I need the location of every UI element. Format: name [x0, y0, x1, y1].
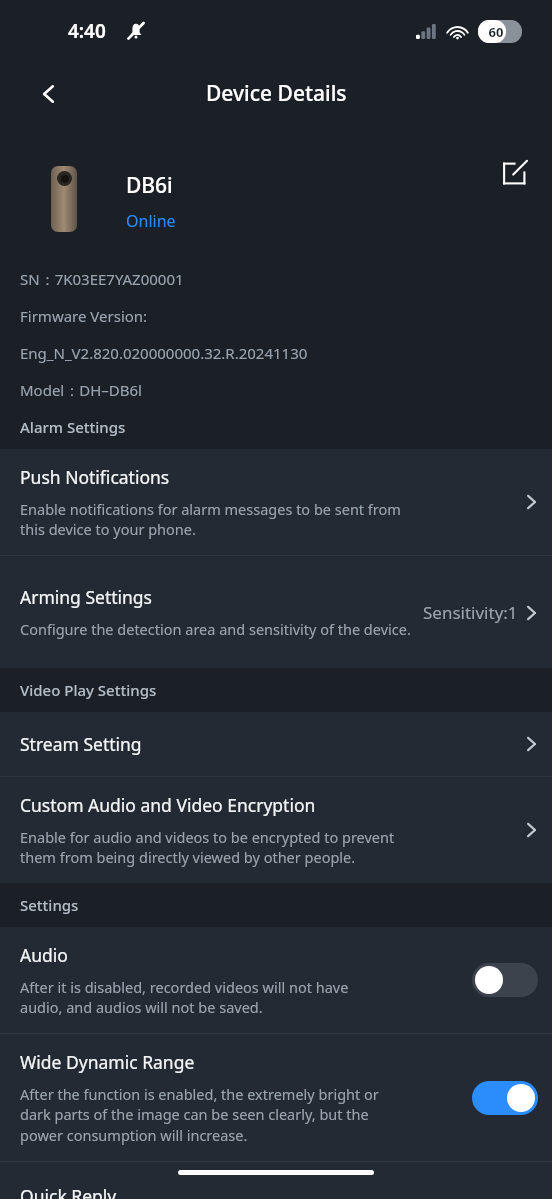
staticText: Wide Dynamic Range [20, 1050, 195, 1074]
staticText: Device Details [206, 79, 347, 108]
button[interactable]: Push Notifications [0, 449, 552, 555]
button[interactable]: Quick Reply [0, 1162, 552, 1199]
staticText: Firmware Version: [20, 306, 148, 326]
staticText: Model：DH–DB6l [20, 380, 142, 400]
staticText: Audio [20, 943, 68, 967]
staticText: Quick Reply [20, 1184, 117, 1199]
staticText: DB6i [126, 171, 173, 200]
staticText: After the function is enabled, the extre… [20, 1084, 379, 1146]
staticText: Push Notifications [20, 465, 170, 489]
staticText: Video Play Settings [20, 680, 157, 700]
staticText: 4:40 [68, 18, 106, 44]
button[interactable]: Toggle off [472, 963, 538, 997]
staticText: Custom Audio and Video Encryption [20, 793, 316, 817]
staticText: After it is disabled, recorded videos wi… [20, 977, 349, 1018]
button[interactable]: Edit device name [490, 149, 538, 197]
staticText: Eng_N_V2.820.020000000.32.R.20241130 [20, 343, 308, 363]
button[interactable]: Toggle on [472, 1081, 538, 1115]
button[interactable]: Arming Settings [0, 556, 552, 668]
staticText: 60 [482, 23, 510, 41]
staticText: SN：7K03EE7YAZ00001 [20, 269, 184, 289]
staticText: Sensitivity:1 [423, 601, 518, 624]
staticText: Enable notifications for alarm messages … [20, 499, 401, 540]
staticText: Alarm Settings [20, 417, 126, 437]
staticText: Settings [20, 895, 79, 915]
button[interactable]: Online [126, 210, 176, 232]
button[interactable]: Custom Audio and Video Encryption [0, 777, 552, 883]
staticText: Stream Setting [20, 732, 142, 756]
staticText: Configure the detection area and sensiti… [20, 619, 411, 639]
button[interactable]: Stream Setting [0, 712, 552, 776]
staticText: Enable for audio and videos to be encryp… [20, 827, 395, 868]
button[interactable]: Back [26, 71, 72, 117]
staticText: Arming Settings [20, 585, 153, 609]
